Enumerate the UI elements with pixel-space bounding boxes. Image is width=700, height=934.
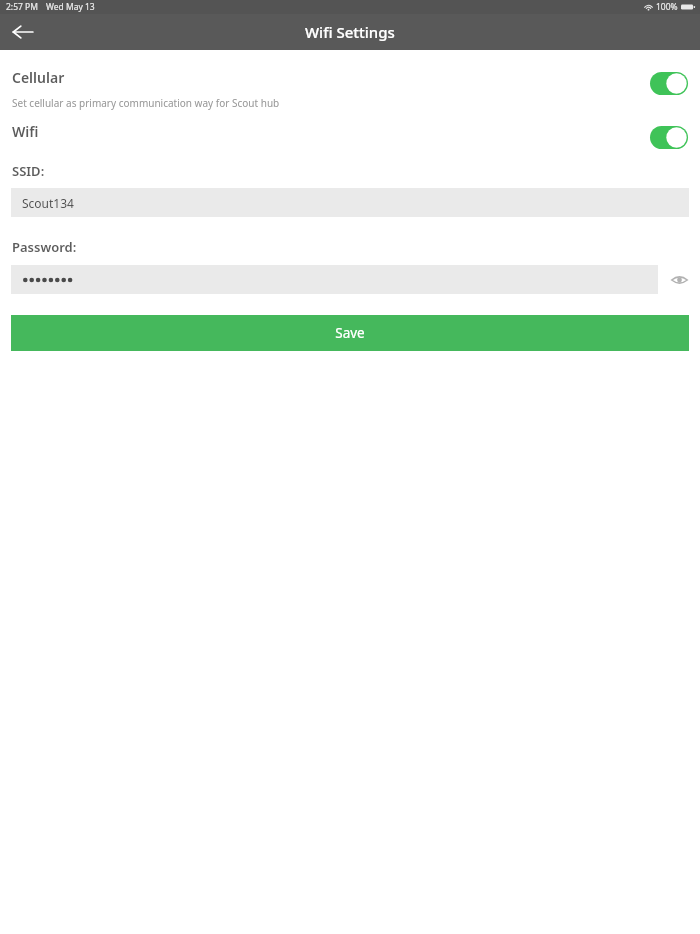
staticText: Wed May 13 <box>46 1 95 13</box>
staticText: SSID: <box>12 162 45 180</box>
button[interactable]: Save <box>11 315 689 351</box>
staticText: Scout134 <box>22 195 74 211</box>
staticText: Save <box>335 324 365 342</box>
button[interactable]: Back <box>0 14 46 50</box>
button[interactable]: Scout134 <box>11 188 689 217</box>
button[interactable]: Show password <box>658 265 700 294</box>
staticText: 100% <box>656 1 678 13</box>
staticText: Wifi <box>12 122 39 141</box>
staticText: Set cellular as primary communication wa… <box>12 96 280 110</box>
staticText: Password: <box>12 238 77 256</box>
button[interactable] <box>11 265 658 294</box>
staticText: Cellular <box>12 68 65 87</box>
button[interactable]: Wifi toggle <box>646 122 692 152</box>
staticText: Wifi Settings <box>305 22 395 42</box>
button[interactable]: Cellular toggle <box>646 68 692 98</box>
staticText: 2:57 PM <box>6 1 38 13</box>
